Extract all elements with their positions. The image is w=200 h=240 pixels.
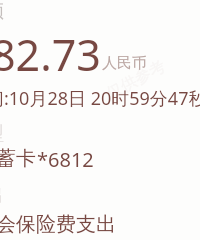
staticText: 人民币 (102, 54, 147, 73)
staticText: 间:10月28日 20时59分47秒 (0, 86, 200, 111)
staticText: *6812 (37, 146, 94, 173)
staticText: 出 (0, 183, 4, 207)
staticText: 额 (0, 0, 4, 23)
staticText: 82.73 (0, 25, 101, 84)
staticText: 型 (0, 122, 4, 146)
staticText: 会保险费支出 (0, 212, 116, 237)
staticText: 仅供参考 (103, 56, 169, 104)
staticText: 蓄卡 (0, 146, 36, 171)
